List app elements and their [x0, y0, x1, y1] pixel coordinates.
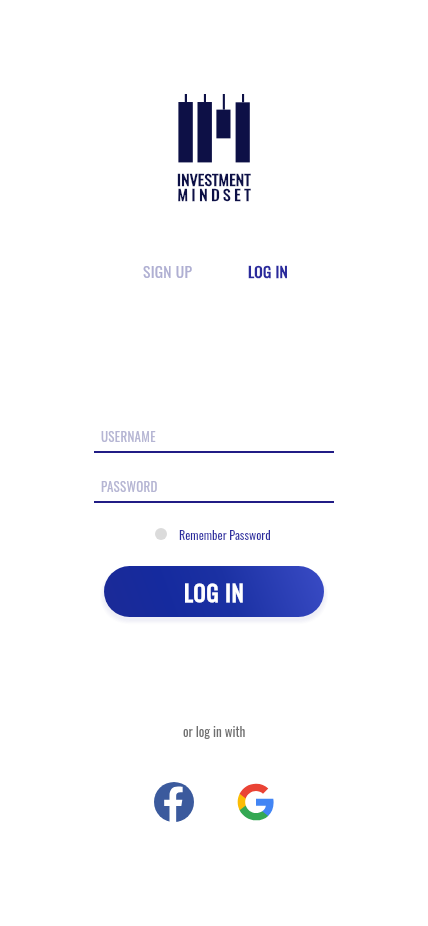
- staticText: PASSWORD: [101, 476, 158, 495]
- staticText: SIGN UP: [143, 260, 193, 283]
- staticText: LOG IN: [184, 575, 245, 608]
- button[interactable]: Remember Password: [155, 524, 271, 544]
- staticText: LOG IN: [248, 260, 289, 283]
- staticText: USERNAME: [101, 426, 156, 445]
- staticText: Remember Password: [179, 525, 271, 543]
- button[interactable]: Log in with Facebook: [154, 782, 194, 822]
- staticText: MINDSET: [2, 182, 428, 205]
- button[interactable]: LOG IN: [104, 566, 324, 617]
- staticText: INVESTMENT: [0, 167, 428, 190]
- button[interactable]: SIGN UP: [118, 259, 218, 283]
- button[interactable]: LOG IN: [218, 259, 318, 283]
- staticText: or log in with: [183, 721, 246, 740]
- button[interactable]: Log in with Google: [236, 782, 276, 822]
